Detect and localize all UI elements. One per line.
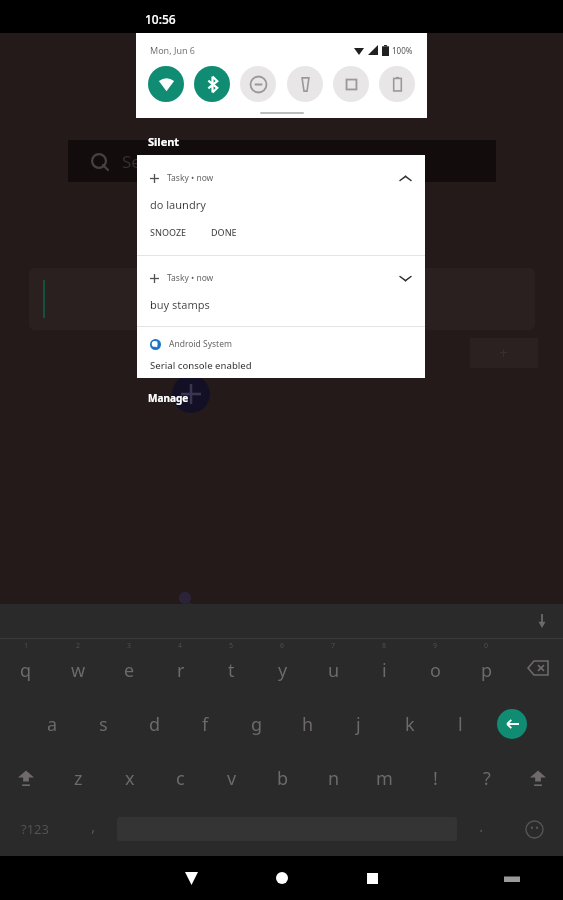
staticText: j bbox=[356, 712, 361, 737]
staticText: c bbox=[176, 766, 185, 791]
button[interactable]: 1 bbox=[0, 639, 52, 697]
button[interactable]: Manage bbox=[148, 391, 189, 405]
button[interactable]: x bbox=[104, 751, 155, 805]
staticText: DONE bbox=[211, 226, 237, 238]
button[interactable]: Flashlight bbox=[287, 66, 323, 102]
button[interactable]: Add task bbox=[172, 375, 210, 413]
button[interactable] bbox=[29, 268, 535, 330]
button[interactable]: Android System bbox=[137, 327, 425, 378]
button[interactable]: Backspace bbox=[512, 639, 563, 697]
staticText: SNOOZE bbox=[150, 226, 187, 238]
staticText: do laundry bbox=[150, 197, 206, 212]
staticText: g bbox=[251, 712, 263, 737]
staticText: Silent bbox=[148, 134, 180, 149]
staticText: ! bbox=[433, 766, 438, 791]
button[interactable]: k bbox=[384, 697, 435, 751]
staticText: Mon, Jun 6 bbox=[150, 44, 195, 56]
staticText: Manage bbox=[148, 391, 189, 405]
staticText: ?123 bbox=[21, 820, 49, 838]
button[interactable]: Shift bbox=[0, 751, 52, 805]
staticText: v bbox=[227, 766, 237, 791]
staticText: Tasky • now bbox=[167, 172, 214, 184]
staticText: 6 bbox=[280, 641, 285, 651]
button[interactable]: 8 bbox=[359, 639, 410, 697]
button[interactable]: Battery saver bbox=[379, 66, 415, 102]
staticText: k bbox=[405, 712, 415, 737]
staticText: . bbox=[479, 815, 484, 837]
button[interactable]: Keyboard bbox=[497, 863, 527, 893]
staticText: buy stamps bbox=[150, 297, 210, 312]
button[interactable]: Emoji bbox=[505, 805, 563, 853]
staticText: q bbox=[20, 658, 32, 683]
button[interactable]: 9 bbox=[410, 639, 461, 697]
staticText: a bbox=[47, 712, 58, 737]
staticText: u bbox=[328, 658, 340, 683]
staticText: 8 bbox=[382, 641, 387, 651]
staticText: 0 bbox=[484, 641, 489, 651]
button[interactable]: l bbox=[435, 697, 486, 751]
button[interactable]: h bbox=[282, 697, 333, 751]
button[interactable]: 4 bbox=[155, 639, 206, 697]
button[interactable]: d bbox=[129, 697, 180, 751]
button[interactable]: c bbox=[155, 751, 206, 805]
button[interactable]: v bbox=[206, 751, 257, 805]
staticText: ? bbox=[483, 766, 491, 791]
button[interactable]: 3 bbox=[104, 639, 155, 697]
staticText: Serial console enabled bbox=[150, 359, 252, 372]
staticText: Search bbox=[122, 150, 176, 173]
button[interactable]: Bluetooth bbox=[194, 66, 230, 102]
button[interactable]: Collapse bbox=[395, 168, 415, 188]
button[interactable]: Back bbox=[176, 856, 206, 900]
button[interactable]: 7 bbox=[308, 639, 359, 697]
staticText: x bbox=[125, 766, 135, 791]
staticText: w bbox=[71, 658, 86, 683]
button[interactable]: Do not disturb bbox=[240, 66, 276, 102]
button[interactable]: 2 bbox=[52, 639, 104, 697]
button[interactable]: 0 bbox=[461, 639, 512, 697]
staticText: r bbox=[177, 658, 185, 683]
button[interactable]: n bbox=[308, 751, 359, 805]
button[interactable]: SNOOZE bbox=[150, 226, 191, 238]
button[interactable]: ! bbox=[410, 751, 461, 805]
button[interactable]: Recents bbox=[357, 863, 387, 893]
staticText: , bbox=[91, 815, 96, 837]
staticText: h bbox=[302, 712, 314, 737]
button[interactable]: Tasky • now bbox=[137, 155, 425, 255]
button[interactable]: Search bbox=[68, 140, 496, 182]
staticText: y bbox=[278, 658, 288, 683]
button[interactable]: f bbox=[180, 697, 231, 751]
button[interactable]: 6 bbox=[257, 639, 308, 697]
staticText: 7 bbox=[331, 641, 336, 651]
button[interactable]: z bbox=[52, 751, 104, 805]
button[interactable]: g bbox=[231, 697, 282, 751]
staticText: s bbox=[99, 712, 108, 737]
button[interactable]: Expand bbox=[395, 268, 415, 288]
staticText: l bbox=[458, 712, 463, 737]
button[interactable]: DONE bbox=[211, 226, 237, 238]
button[interactable]: Shift bbox=[512, 751, 563, 805]
button[interactable]: ?123 bbox=[0, 805, 69, 853]
staticText: p bbox=[481, 658, 493, 683]
button[interactable]: b bbox=[257, 751, 308, 805]
button[interactable]: Enter bbox=[486, 697, 537, 751]
staticText: d bbox=[149, 712, 161, 737]
button[interactable]: Home bbox=[267, 863, 297, 893]
button[interactable]: s bbox=[78, 697, 129, 751]
staticText: b bbox=[277, 766, 289, 791]
staticText: 4 bbox=[178, 641, 183, 651]
staticText: f bbox=[202, 712, 209, 737]
button[interactable]: j bbox=[333, 697, 384, 751]
button[interactable]: ? bbox=[461, 751, 512, 805]
button[interactable]: Auto-rotate bbox=[333, 66, 369, 102]
button[interactable]: a bbox=[27, 697, 78, 751]
button[interactable]: m bbox=[359, 751, 410, 805]
staticText: m bbox=[376, 766, 393, 791]
button[interactable]: Tasky • now bbox=[137, 256, 425, 326]
button[interactable]: 5 bbox=[206, 639, 257, 697]
button[interactable]: Wi-Fi bbox=[148, 66, 184, 102]
